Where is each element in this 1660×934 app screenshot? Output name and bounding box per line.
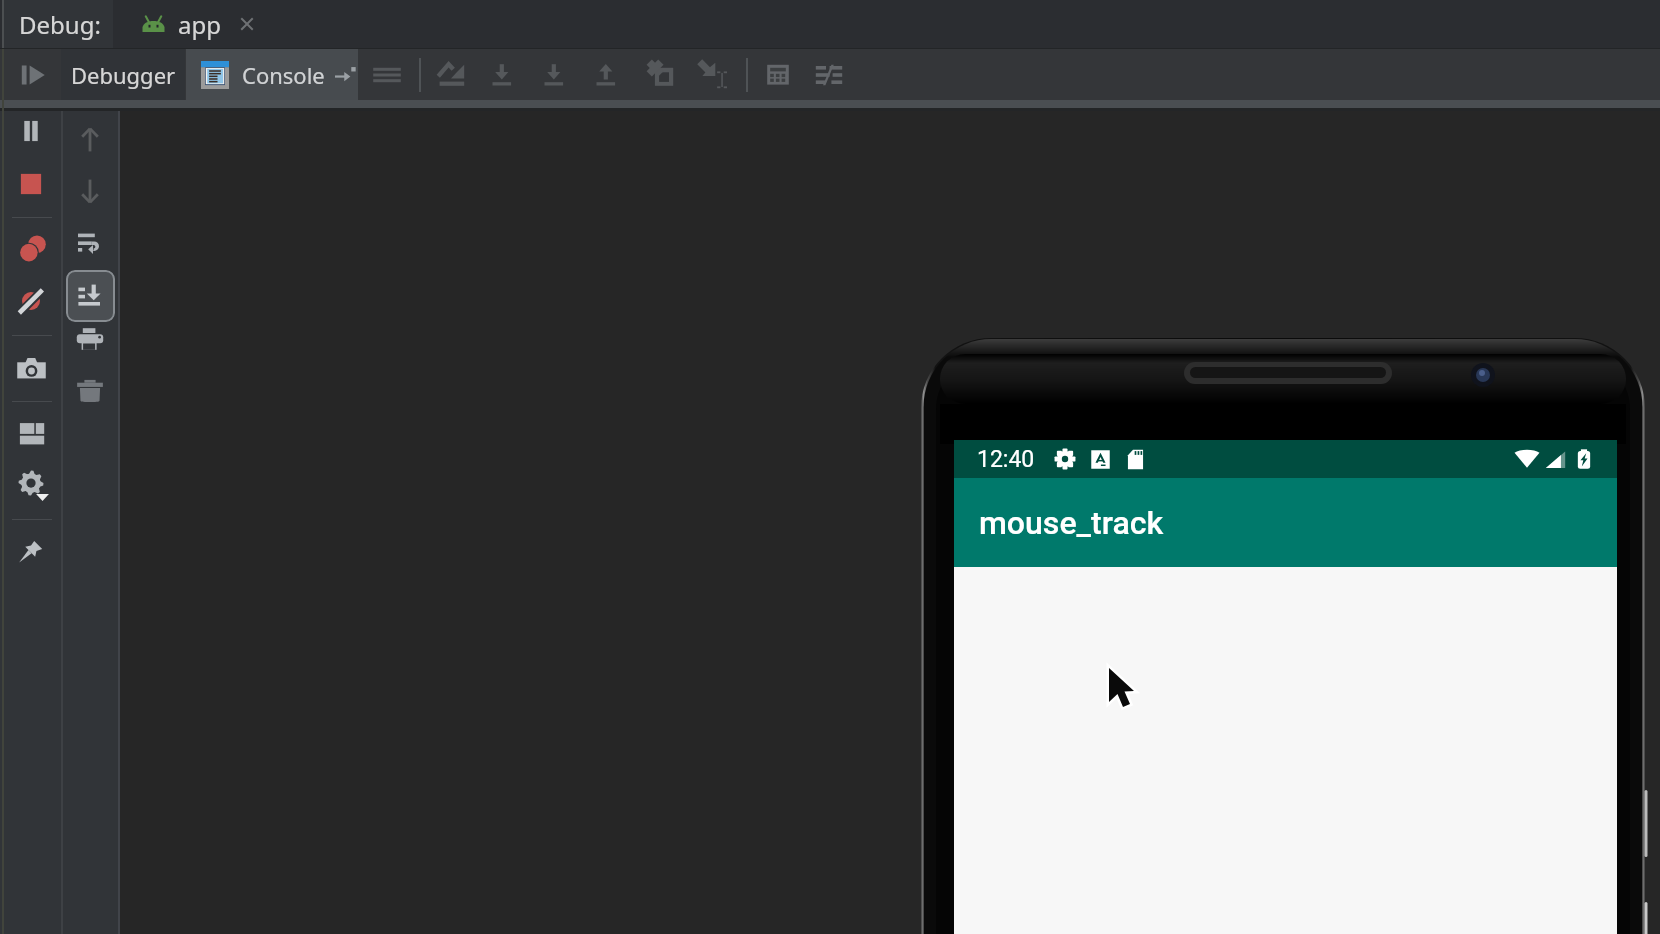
button[interactable]: Resume program (8, 49, 58, 100)
button[interactable]: Close tab (235, 12, 259, 36)
button[interactable]: app (113, 0, 268, 48)
button[interactable]: Pin tab (7, 527, 55, 575)
button[interactable]: Settings (7, 461, 55, 509)
button[interactable]: Step out (581, 49, 633, 101)
button[interactable]: Step into (477, 49, 529, 101)
staticText: app (178, 8, 221, 41)
button[interactable]: Drop frame (634, 49, 686, 101)
button[interactable]: Layout inspector (7, 409, 55, 457)
button[interactable]: Scroll to the end (66, 270, 115, 322)
staticText: Debug: (19, 8, 101, 41)
button[interactable]: Down the stack trace (66, 167, 114, 215)
staticText: Debugger (71, 60, 176, 90)
staticText: 12:40 (977, 446, 1035, 473)
button[interactable]: Use soft wraps (66, 218, 114, 266)
button[interactable]: Pause program (7, 107, 55, 155)
button[interactable]: View breakpoints (7, 225, 55, 273)
button[interactable]: Console (186, 49, 358, 100)
button[interactable]: Settings (803, 49, 855, 101)
button[interactable]: Debugger (61, 49, 185, 100)
button[interactable]: Stop (7, 160, 55, 208)
button[interactable]: Run to cursor (686, 49, 738, 101)
staticText: Console (242, 60, 325, 90)
button[interactable]: Force step into (529, 49, 581, 101)
button[interactable]: Take screenshot (7, 344, 55, 392)
button[interactable]: Evaluate expression (752, 49, 804, 101)
button[interactable]: Menu (361, 49, 413, 101)
button[interactable]: Up the stack trace (66, 116, 114, 164)
button[interactable]: Mute breakpoints (7, 277, 55, 325)
button[interactable]: Print (66, 315, 114, 363)
button[interactable]: Clear all (66, 366, 114, 414)
button[interactable]: Step over (425, 49, 477, 101)
staticText: mouse_track (979, 504, 1164, 542)
